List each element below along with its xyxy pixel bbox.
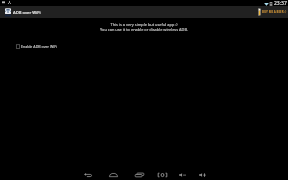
staticText: You can use it to enable or disable wire…	[100, 27, 188, 32]
button[interactable]: Recents	[133, 168, 146, 180]
button[interactable]: Volume down	[176, 168, 189, 180]
button[interactable]: Enable ADB over WiFi	[16, 44, 57, 49]
button[interactable]: Home	[107, 168, 120, 180]
staticText: This is a very simple but useful app :)	[110, 22, 178, 27]
button[interactable]: Screenshot	[156, 168, 169, 180]
staticText: BUY ME A BEER :)	[262, 10, 287, 14]
staticText: Enable ADB over WiFi	[21, 44, 57, 49]
button[interactable]: Volume up	[196, 168, 209, 180]
staticText: 23:37	[274, 0, 287, 7]
button[interactable]: Buy me a beer	[258, 8, 287, 16]
button[interactable]: Back	[81, 168, 94, 180]
staticText: ADB over WiFi	[13, 10, 41, 16]
